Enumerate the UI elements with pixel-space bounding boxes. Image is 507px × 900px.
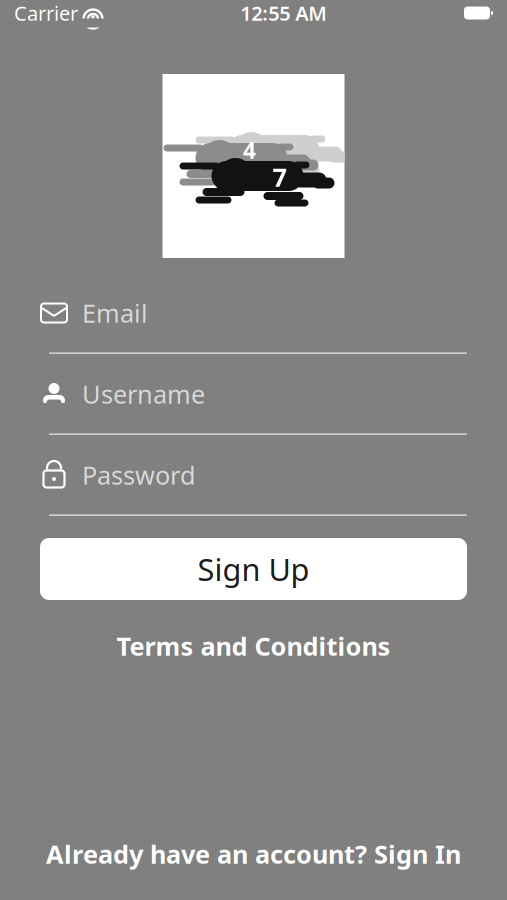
- button[interactable]: Password: [40, 460, 467, 516]
- staticText: Terms and Conditions: [116, 629, 390, 663]
- staticText: Password: [82, 458, 196, 492]
- staticText: Already have an account? Sign In: [46, 837, 461, 871]
- button[interactable]: Terms and Conditions: [40, 631, 467, 661]
- staticText: Username: [82, 377, 205, 411]
- staticText: Carrier: [14, 0, 78, 26]
- staticText: 12:55 AM: [240, 0, 327, 26]
- staticText: Email: [82, 296, 148, 330]
- button[interactable]: Email: [40, 298, 467, 354]
- button[interactable]: Already have an account? Sign In: [24, 837, 483, 871]
- staticText: 7: [272, 160, 286, 194]
- button[interactable]: Sign Up: [40, 538, 467, 600]
- staticText: 4: [243, 135, 256, 165]
- staticText: Sign Up: [197, 549, 309, 589]
- button[interactable]: Username: [40, 379, 467, 435]
